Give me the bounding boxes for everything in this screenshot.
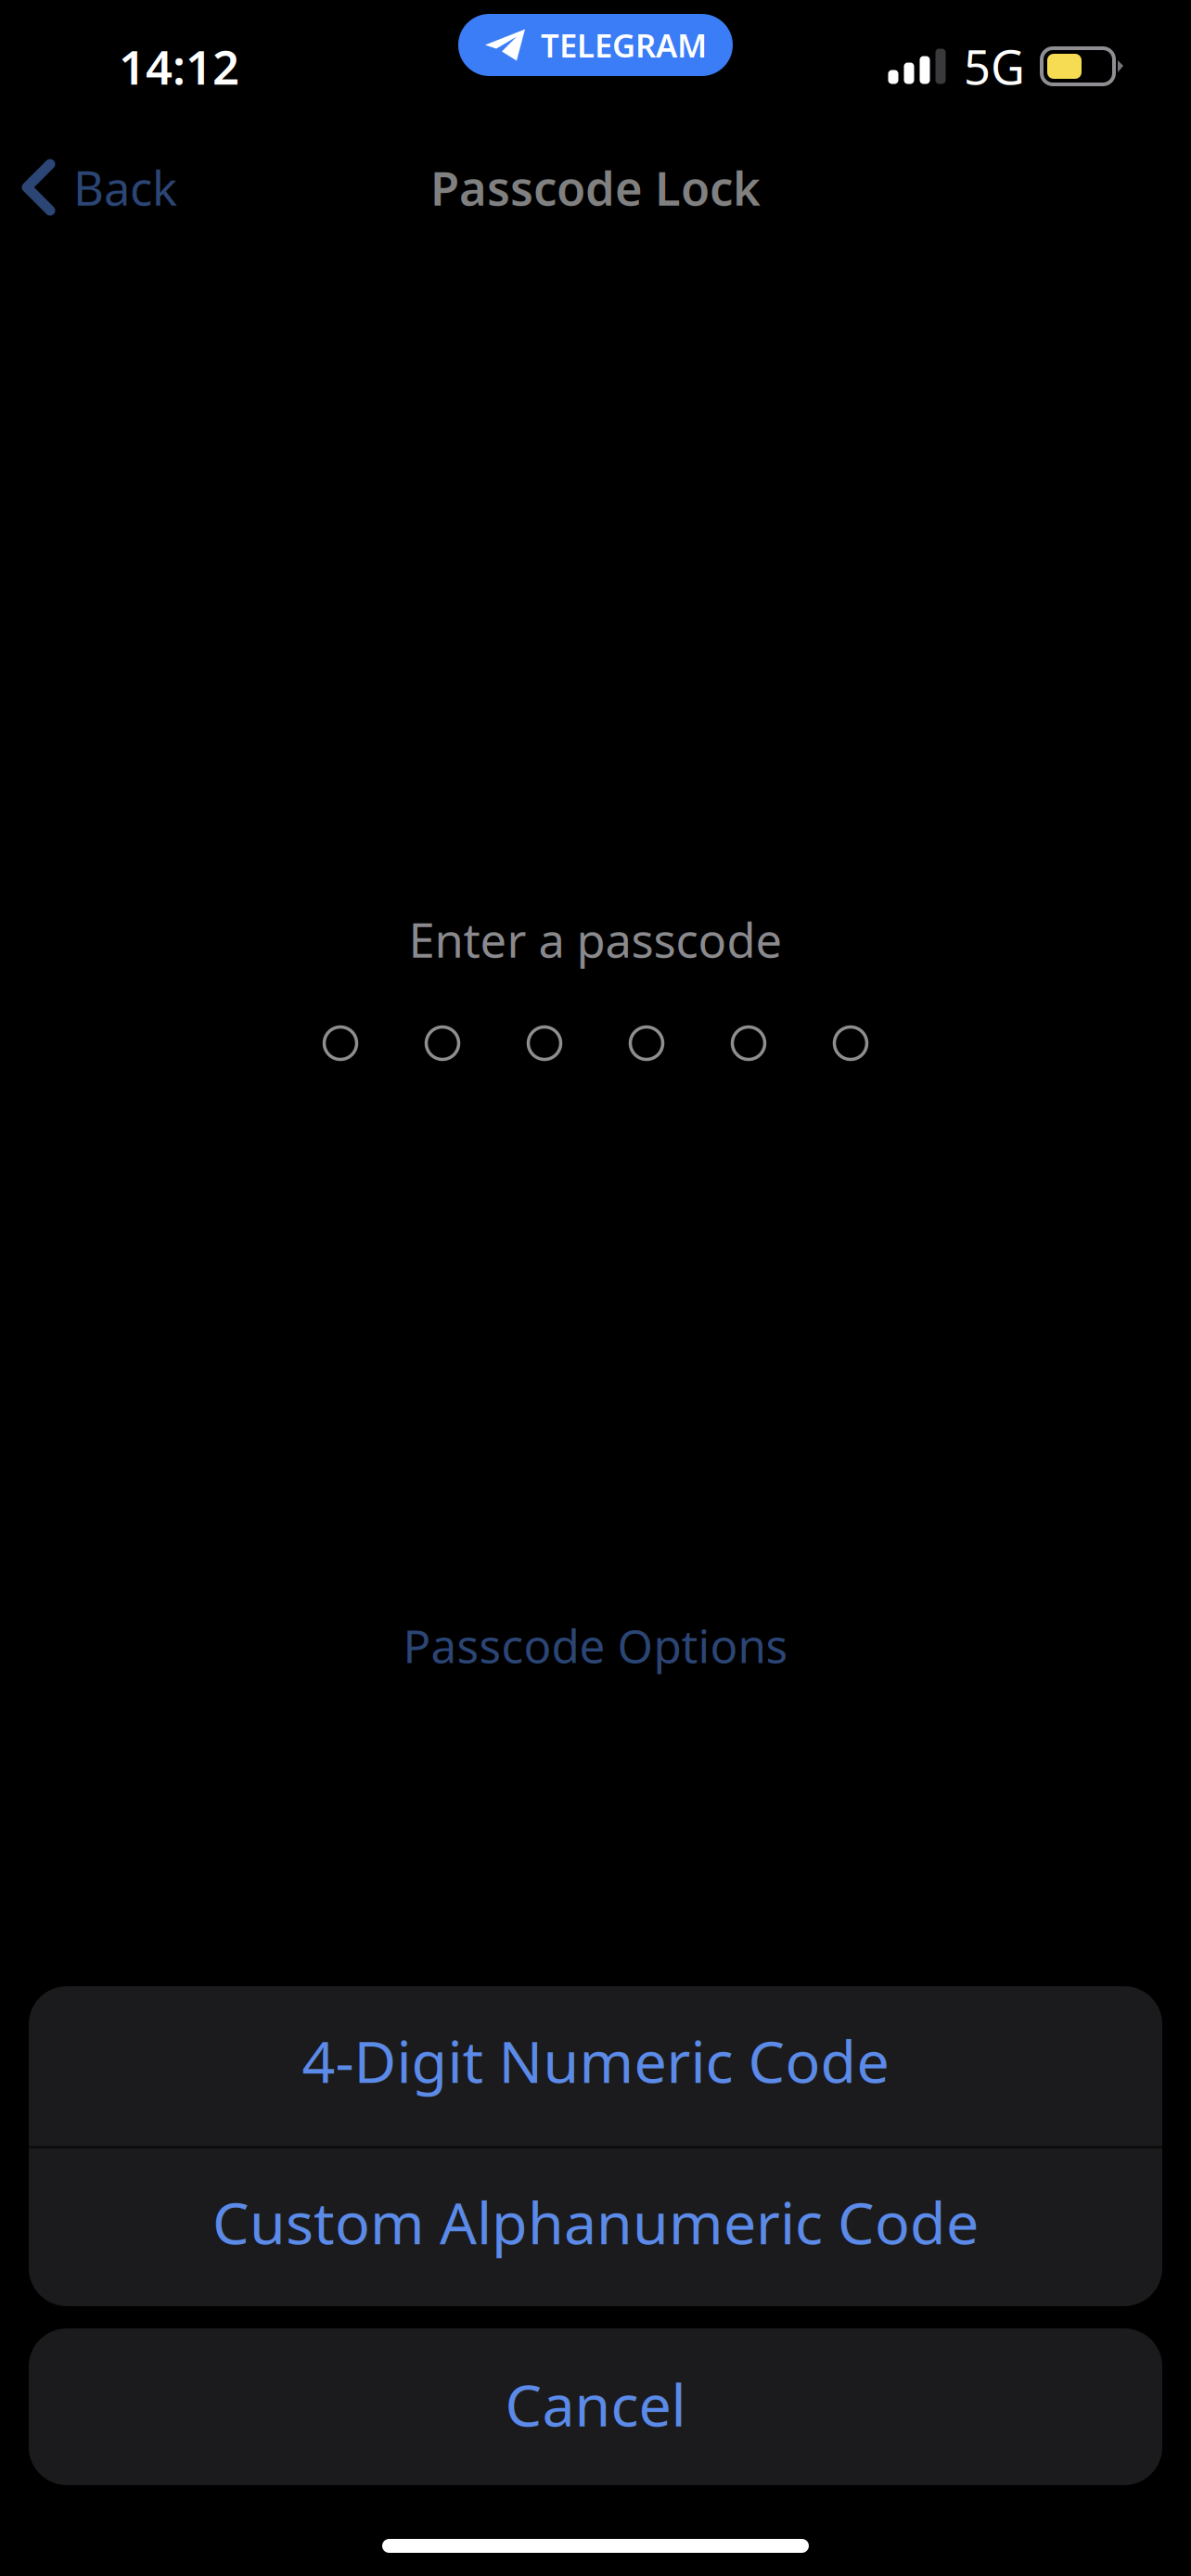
button[interactable]: Passcode Options: [362, 1594, 829, 1696]
staticText: Custom Alphanumeric Code: [212, 2183, 979, 2260]
staticText: Passcode Lock: [430, 156, 761, 219]
button[interactable]: Back: [0, 139, 205, 235]
staticText: Back: [73, 156, 177, 219]
staticText: TELEGRAM: [541, 24, 707, 66]
button[interactable]: Custom Alphanumeric Code: [29, 2149, 1162, 2306]
staticText: Cancel: [505, 2365, 686, 2443]
button[interactable]: Cancel: [29, 2328, 1162, 2485]
staticText: 5G: [964, 35, 1025, 98]
staticText: Enter a passcode: [409, 908, 782, 971]
staticText: 4-Digit Numeric Code: [302, 2022, 889, 2099]
button[interactable]: 4-Digit Numeric Code: [29, 1986, 1162, 2146]
staticText: 14:12: [119, 35, 239, 98]
staticText: Passcode Options: [403, 1615, 788, 1676]
